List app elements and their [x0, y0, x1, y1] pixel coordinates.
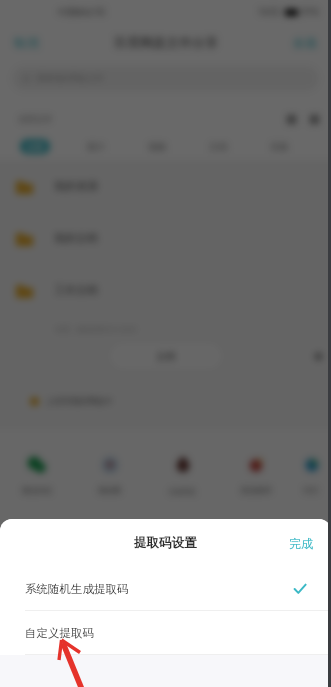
button[interactable]: 文档: [111, 344, 221, 368]
staticText: 工作文档: [54, 283, 98, 297]
staticText: 上传到我的网盘中: [45, 396, 113, 407]
button[interactable]: 系统随机生成提取码: [0, 567, 331, 611]
button[interactable]: 我的文档: [0, 212, 331, 264]
button[interactable]: 音频: [264, 139, 294, 154]
button[interactable]: 朋友圈: [73, 453, 146, 495]
staticText: 系统随机生成提取码: [25, 582, 129, 596]
staticText: 自定义提取码: [25, 626, 94, 640]
staticText: 百度网盘文件分享: [114, 34, 218, 50]
button[interactable]: 文档: [203, 139, 233, 154]
button[interactable]: 新浪微博: [219, 453, 292, 495]
button[interactable]: 全部: [20, 139, 50, 154]
button[interactable]: 自定义提取码: [0, 611, 331, 655]
button[interactable]: 完成: [271, 524, 331, 563]
button[interactable]: 取消: [0, 27, 52, 58]
staticText: 文档: [156, 350, 176, 363]
button[interactable]: 工作文档: [0, 264, 331, 316]
other: Selected: [294, 583, 306, 595]
button[interactable]: 我的资源: [0, 160, 331, 212]
staticText: 我的文档: [54, 231, 98, 245]
staticText: 全部: [26, 141, 44, 152]
button[interactable]: 视频: [142, 139, 172, 154]
staticText: 我的资源: [54, 179, 98, 193]
staticText: 完成: [289, 536, 313, 551]
button[interactable]: 全选: [279, 27, 331, 58]
button[interactable]: 图片: [81, 139, 111, 154]
staticText: 中国移动 5G: [58, 6, 106, 18]
staticText: 提取码设置: [134, 535, 197, 551]
button[interactable]: 微信好友: [0, 453, 73, 495]
button[interactable]: 钉钉: [292, 453, 331, 495]
button[interactable]: QQ好友: [146, 453, 219, 496]
